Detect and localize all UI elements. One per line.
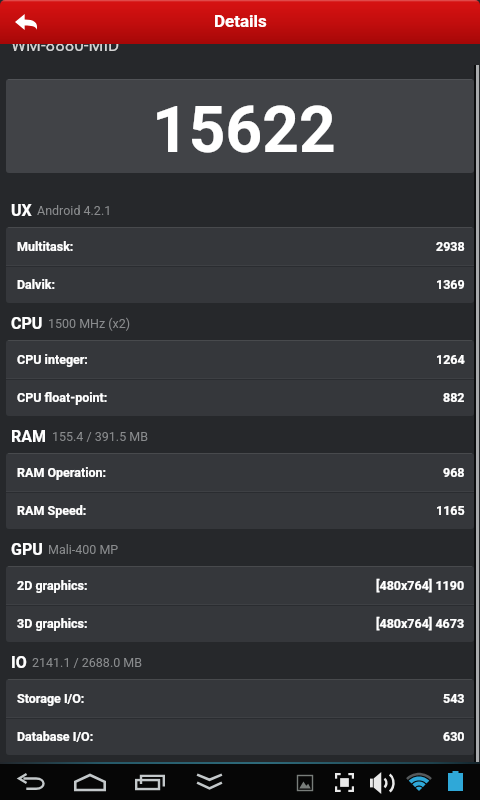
staticText: Storage I/O:: [17, 691, 85, 706]
staticText: 15622: [152, 93, 336, 168]
staticText: 1500 MHz (x2): [48, 316, 131, 331]
button[interactable]: CPU float-point:: [6, 378, 474, 416]
staticText: IO: [11, 653, 27, 672]
staticText: Multitask:: [17, 239, 74, 254]
staticText: Dalvik:: [17, 277, 55, 292]
staticText: CPU: [11, 314, 43, 333]
staticText: 543: [443, 691, 465, 706]
staticText: RAM Operation:: [17, 465, 107, 480]
staticText: [480x764] 4673: [376, 616, 465, 631]
staticText: 1369: [436, 277, 465, 292]
staticText: RAM: [11, 427, 47, 446]
button[interactable]: Back: [0, 0, 53, 44]
button[interactable]: Hide navigation bar: [186, 764, 232, 800]
staticText: 630: [443, 729, 465, 744]
staticText: 2141.1 / 2688.0 MB: [32, 655, 143, 670]
button[interactable]: Multitask:: [6, 227, 474, 265]
button[interactable]: Home: [67, 764, 113, 800]
staticText: CPU integer:: [17, 352, 88, 367]
staticText: 155.4 / 391.5 MB: [52, 429, 148, 444]
button[interactable]: 3D graphics:: [6, 604, 474, 642]
button[interactable]: Storage I/O:: [6, 679, 474, 717]
staticText: WM-8880-MID: [11, 35, 120, 55]
staticText: 1165: [436, 503, 465, 518]
button[interactable]: 2D graphics:: [6, 566, 474, 604]
button[interactable]: Recent apps: [127, 764, 173, 800]
staticText: 882: [443, 390, 465, 405]
staticText: Database I/O:: [17, 729, 94, 744]
staticText: 2D graphics:: [17, 578, 88, 593]
staticText: 968: [443, 465, 465, 480]
staticText: Mali-400 MP: [48, 542, 119, 557]
staticText: 3D graphics:: [17, 616, 88, 631]
staticText: CPU float-point:: [17, 390, 108, 405]
staticText: Android 4.2.1: [37, 203, 112, 218]
staticText: UX: [11, 201, 32, 220]
staticText: 1264: [436, 352, 465, 367]
button[interactable]: CPU integer:: [6, 340, 474, 378]
staticText: GPU: [11, 540, 43, 559]
button[interactable]: RAM Speed:: [6, 491, 474, 529]
button[interactable]: RAM Operation:: [6, 453, 474, 491]
button[interactable]: Dalvik:: [6, 265, 474, 303]
staticText: RAM Speed:: [17, 503, 87, 518]
staticText: 2938: [436, 239, 465, 254]
button[interactable]: Back: [8, 764, 54, 800]
staticText: [480x764] 1190: [376, 578, 465, 593]
staticText: Details: [214, 11, 267, 31]
button[interactable]: Database I/O:: [6, 717, 474, 755]
